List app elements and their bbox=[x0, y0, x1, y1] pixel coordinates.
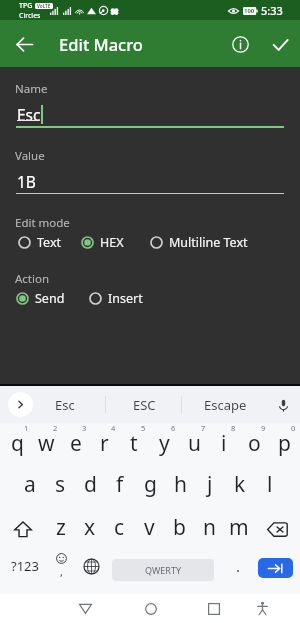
button[interactable]: Backspace bbox=[254, 506, 300, 548]
button[interactable]: Accessibility bbox=[245, 594, 279, 623]
button[interactable]: u bbox=[179, 422, 209, 464]
button[interactable]: Next field bbox=[258, 558, 293, 578]
button[interactable]: r bbox=[90, 422, 119, 464]
button[interactable]: p bbox=[269, 422, 299, 464]
button[interactable]: QWERTY bbox=[112, 559, 214, 581]
button[interactable]: d bbox=[75, 463, 105, 505]
staticText: 0 bbox=[291, 423, 296, 433]
button[interactable]: i bbox=[209, 422, 239, 464]
button[interactable]: b bbox=[164, 506, 194, 548]
staticText: c bbox=[114, 513, 125, 542]
staticText: Name bbox=[15, 81, 48, 97]
staticText: q bbox=[11, 429, 24, 458]
staticText: v bbox=[144, 513, 155, 542]
staticText: i bbox=[221, 429, 227, 458]
staticText: h bbox=[174, 470, 187, 499]
button[interactable]: x bbox=[75, 506, 104, 548]
staticText: Edit Macro bbox=[59, 33, 143, 55]
button[interactable]: w bbox=[32, 422, 61, 464]
staticText: n bbox=[203, 513, 216, 542]
staticText: VoLTE bbox=[37, 3, 51, 9]
staticText: HEX bbox=[100, 234, 124, 251]
button[interactable]: c bbox=[104, 506, 134, 548]
button[interactable]: Voice input bbox=[270, 392, 296, 418]
button[interactable]: Shift bbox=[0, 506, 46, 548]
staticText: ESC bbox=[133, 396, 156, 414]
button[interactable]: n bbox=[194, 506, 224, 548]
button[interactable]: Emoji and comma bbox=[48, 545, 74, 587]
button[interactable]: m bbox=[224, 506, 254, 548]
staticText: o bbox=[248, 429, 261, 458]
button[interactable]: j bbox=[195, 463, 225, 505]
staticText: Action bbox=[15, 271, 50, 287]
staticText: b bbox=[173, 513, 186, 542]
staticText: x bbox=[84, 513, 96, 542]
staticText: l bbox=[267, 470, 273, 499]
staticText: Multiline Text bbox=[169, 234, 248, 251]
button[interactable]: ?123 bbox=[3, 545, 47, 587]
staticText: f bbox=[116, 470, 124, 499]
staticText: d bbox=[84, 470, 97, 499]
button[interactable]: HEX bbox=[81, 231, 124, 253]
staticText: Insert bbox=[108, 290, 143, 307]
staticText: 4 bbox=[111, 423, 116, 433]
staticText: Esc bbox=[17, 104, 41, 125]
button[interactable]: Recent apps bbox=[197, 594, 231, 623]
button[interactable]: ESC bbox=[114, 386, 174, 423]
staticText: 7 bbox=[201, 423, 206, 433]
button[interactable]: q bbox=[3, 422, 32, 464]
button[interactable]: t bbox=[119, 422, 149, 464]
staticText: 3 bbox=[82, 423, 87, 433]
staticText: 5 bbox=[141, 423, 146, 433]
button[interactable]: Insert bbox=[89, 287, 143, 309]
staticText: Circles bbox=[19, 11, 41, 21]
button[interactable]: y bbox=[149, 422, 179, 464]
button[interactable]: a bbox=[15, 463, 45, 505]
button[interactable]: g bbox=[135, 463, 165, 505]
staticText: Escape bbox=[204, 396, 247, 414]
button[interactable]: v bbox=[134, 506, 164, 548]
staticText: s bbox=[55, 470, 66, 499]
staticText: ?123 bbox=[11, 557, 39, 575]
staticText: 1 bbox=[24, 423, 29, 433]
button[interactable]: Send bbox=[16, 287, 65, 309]
button[interactable]: Multiline Text bbox=[150, 231, 248, 253]
button[interactable]: k bbox=[225, 463, 255, 505]
button[interactable]: Expand suggestions bbox=[8, 392, 33, 417]
button[interactable]: z bbox=[46, 506, 75, 548]
staticText: Send bbox=[35, 290, 65, 307]
staticText: j bbox=[207, 470, 213, 499]
staticText: z bbox=[56, 513, 66, 542]
button[interactable]: Back bbox=[68, 594, 102, 623]
staticText: TPG bbox=[19, 1, 33, 11]
button[interactable]: Back bbox=[8, 28, 40, 60]
button[interactable]: f bbox=[105, 463, 135, 505]
button[interactable]: Info bbox=[223, 27, 257, 61]
staticText: 6 bbox=[171, 423, 176, 433]
button[interactable]: Change language bbox=[78, 545, 104, 587]
staticText: y bbox=[159, 429, 170, 458]
button[interactable]: . bbox=[224, 545, 252, 587]
button[interactable]: Escape bbox=[190, 386, 261, 423]
button[interactable]: h bbox=[165, 463, 195, 505]
staticText: 1B bbox=[17, 171, 36, 192]
button[interactable]: s bbox=[45, 463, 75, 505]
staticText: r bbox=[100, 429, 109, 458]
button[interactable]: e bbox=[61, 422, 90, 464]
staticText: 9 bbox=[261, 423, 266, 433]
staticText: Value bbox=[15, 148, 45, 164]
button[interactable]: o bbox=[239, 422, 269, 464]
button[interactable]: l bbox=[255, 463, 285, 505]
button[interactable]: Esc bbox=[35, 386, 95, 423]
staticText: g bbox=[144, 470, 157, 499]
staticText: e bbox=[70, 429, 82, 458]
staticText: Esc bbox=[55, 396, 75, 414]
button[interactable]: Text bbox=[18, 231, 62, 253]
staticText: 2 bbox=[53, 423, 58, 433]
staticText: k bbox=[234, 470, 246, 499]
button[interactable]: Home bbox=[134, 594, 168, 623]
staticText: m bbox=[229, 513, 249, 542]
staticText: 5:33 bbox=[261, 3, 283, 18]
staticText: a bbox=[24, 470, 36, 499]
button[interactable]: Save bbox=[263, 27, 297, 61]
